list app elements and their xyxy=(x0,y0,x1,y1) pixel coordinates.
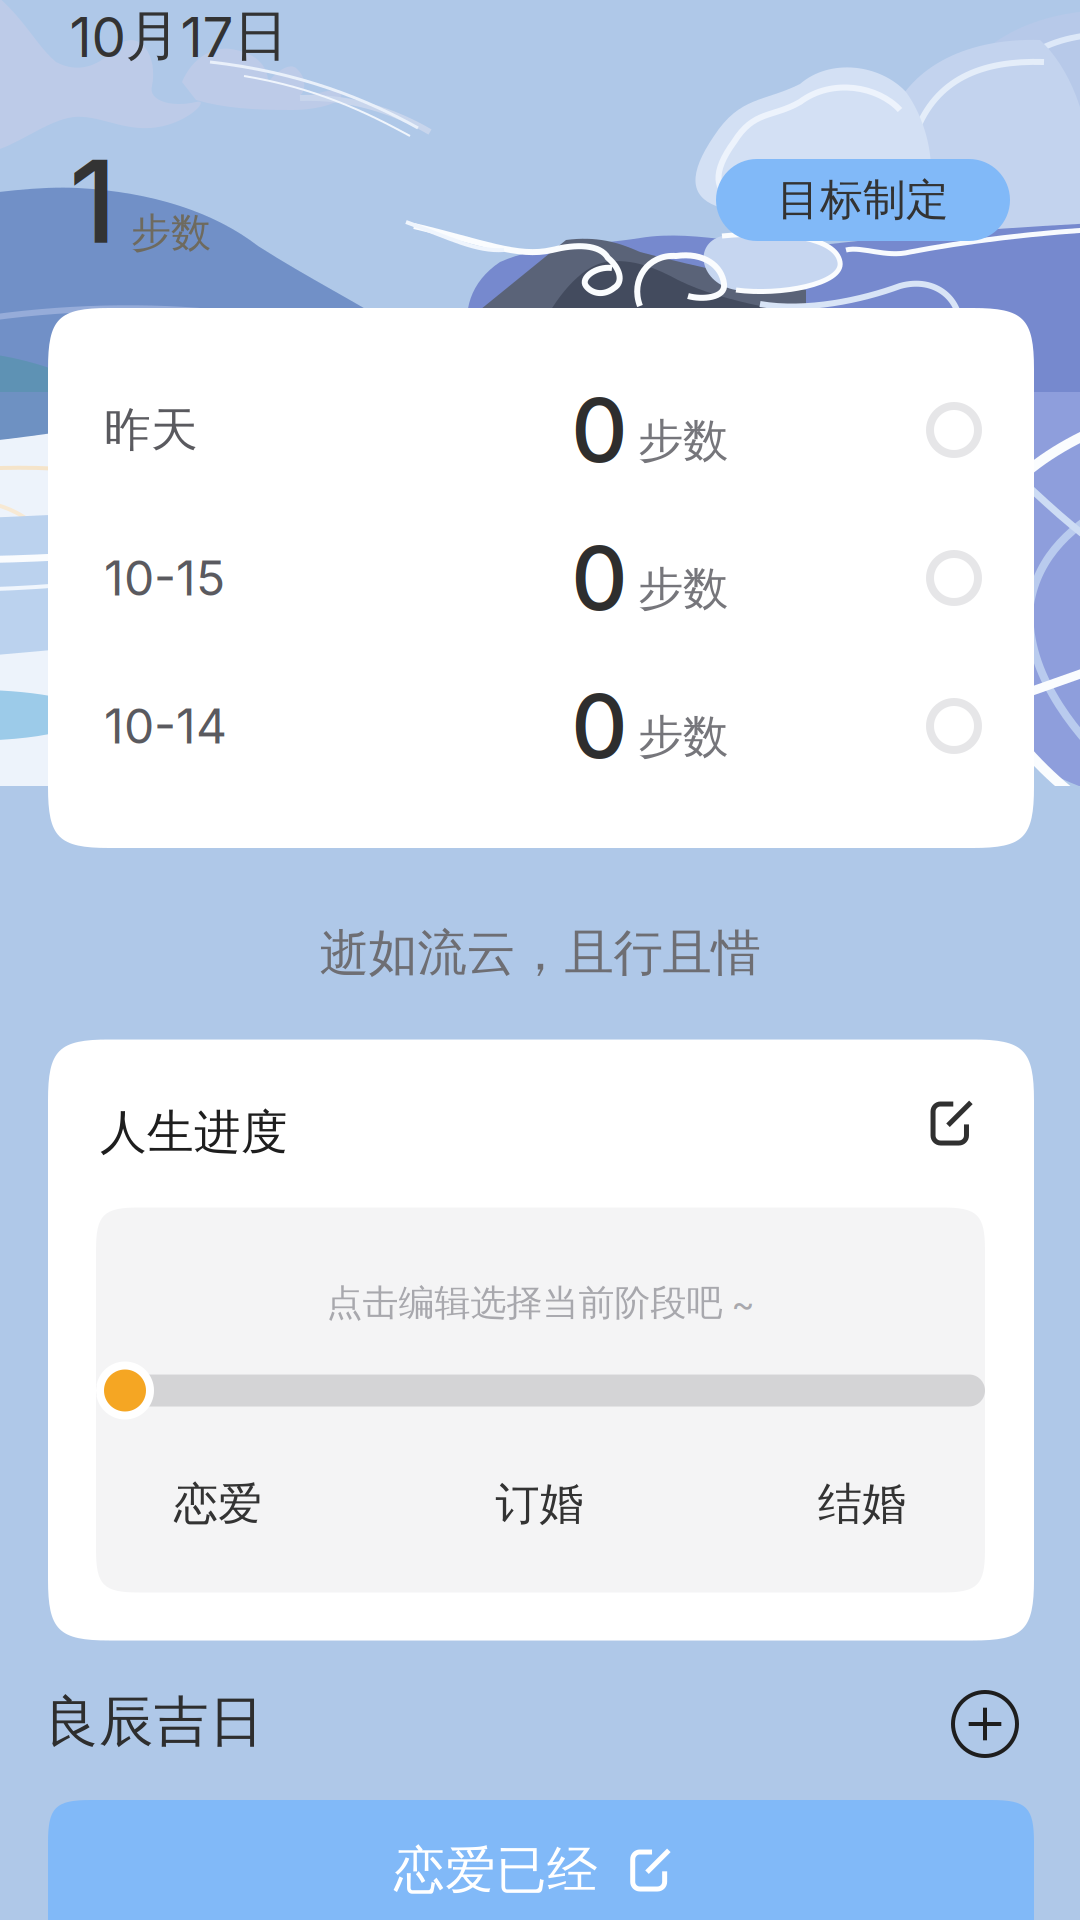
staticText: 1 xyxy=(69,132,117,270)
staticText: 10-14 xyxy=(104,697,227,755)
button[interactable]: 编辑人生进度 xyxy=(910,1085,986,1161)
staticText: 人生进度 xyxy=(100,1103,288,1162)
staticText: 恋爱 xyxy=(174,1476,262,1532)
staticText: 步数 xyxy=(638,560,728,617)
staticText: 步数 xyxy=(638,412,728,469)
staticText: 昨天 xyxy=(104,401,198,459)
staticText: 良辰吉日 xyxy=(44,1688,264,1756)
staticText: 结婚 xyxy=(818,1476,906,1532)
staticText: 目标制定 xyxy=(777,173,949,227)
staticText: 步数 xyxy=(638,708,728,765)
staticText: 逝如流云，且行且惜 xyxy=(319,922,760,984)
staticText: 订婚 xyxy=(495,1476,583,1532)
staticText: 0 xyxy=(571,525,628,631)
staticText: 0 xyxy=(571,673,628,779)
button[interactable]: 恋爱已经 xyxy=(48,1800,1034,1920)
staticText: 恋爱已经 xyxy=(394,1839,598,1902)
staticText: 10-15 xyxy=(104,549,225,607)
staticText: 点击编辑选择当前阶段吧 ~ xyxy=(326,1280,754,1326)
staticText: 10月17日 xyxy=(69,2,288,70)
button[interactable]: 添加良辰吉日 xyxy=(937,1676,1033,1772)
staticText: 步数 xyxy=(131,208,211,258)
button[interactable]: 目标制定 xyxy=(716,159,1010,241)
staticText: 0 xyxy=(571,377,628,483)
